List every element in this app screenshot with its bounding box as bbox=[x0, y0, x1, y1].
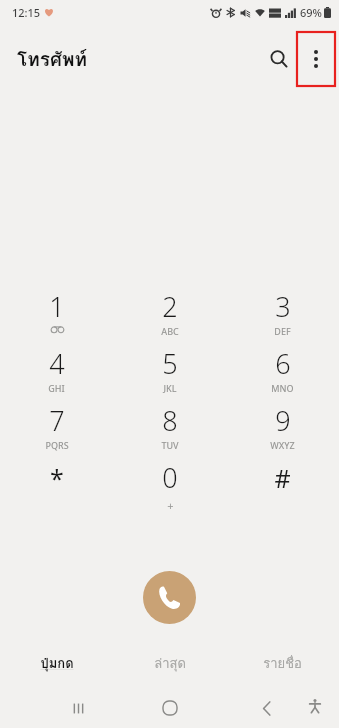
staticText: โทรศัพท์ bbox=[17, 44, 88, 74]
staticText: 6 bbox=[275, 345, 291, 382]
staticText: ล่าสุด bbox=[154, 653, 186, 674]
button[interactable]: 3 bbox=[226, 288, 339, 345]
button[interactable]: 9 bbox=[226, 402, 339, 459]
button[interactable]: 2 bbox=[113, 288, 226, 345]
staticText: 12:15 bbox=[12, 5, 41, 20]
staticText: 3 bbox=[275, 288, 291, 325]
staticText: MNO bbox=[271, 382, 294, 394]
staticText: # bbox=[274, 461, 291, 495]
button[interactable]: Recent apps bbox=[58, 688, 98, 728]
button[interactable]: 1 bbox=[0, 288, 113, 345]
staticText: 69% bbox=[300, 5, 322, 20]
staticText: DEF bbox=[274, 325, 291, 337]
staticText: * bbox=[50, 461, 64, 495]
button[interactable]: Back bbox=[247, 688, 287, 728]
button[interactable]: 4 bbox=[0, 345, 113, 402]
staticText: ABC bbox=[161, 325, 179, 337]
staticText: รายชื่อ bbox=[263, 653, 302, 674]
button[interactable]: ปุ่มกด bbox=[0, 645, 113, 681]
button[interactable]: 5 bbox=[113, 345, 226, 402]
button[interactable]: 6 bbox=[226, 345, 339, 402]
staticText: GHI bbox=[48, 382, 65, 394]
staticText: ปุ่มกด bbox=[40, 653, 74, 674]
button[interactable]: รายชื่อ bbox=[226, 645, 339, 681]
staticText: 5 bbox=[162, 345, 178, 382]
button[interactable]: Home bbox=[150, 688, 190, 728]
staticText: JKL bbox=[163, 382, 177, 394]
staticText: 0 bbox=[162, 459, 178, 496]
button[interactable]: More options bbox=[297, 32, 335, 86]
staticText: 1 bbox=[49, 288, 65, 325]
staticText: + bbox=[167, 498, 174, 513]
staticText: 4 bbox=[49, 345, 65, 382]
button[interactable]: Accessibility bbox=[297, 688, 333, 724]
button[interactable]: 7 bbox=[0, 402, 113, 459]
button[interactable]: ล่าสุด bbox=[113, 645, 226, 681]
button[interactable]: # bbox=[226, 459, 339, 516]
staticText: PQRS bbox=[45, 439, 69, 451]
button[interactable]: Call bbox=[143, 571, 196, 624]
staticText: 9 bbox=[275, 402, 291, 439]
staticText: WXYZ bbox=[270, 439, 295, 451]
staticText: 2 bbox=[162, 288, 178, 325]
button[interactable]: 8 bbox=[113, 402, 226, 459]
button[interactable]: Search bbox=[259, 39, 299, 79]
staticText: 8 bbox=[162, 402, 178, 439]
button[interactable]: 0 bbox=[113, 459, 226, 516]
staticText: 7 bbox=[49, 402, 65, 439]
button[interactable]: * bbox=[0, 459, 113, 516]
staticText: TUV bbox=[161, 439, 179, 451]
